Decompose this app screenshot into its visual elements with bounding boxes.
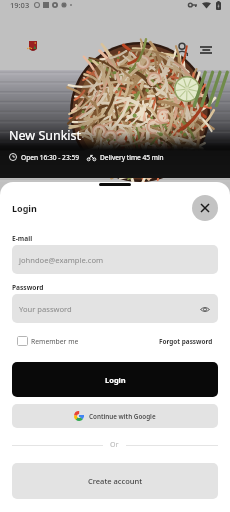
staticText: Remember me xyxy=(31,337,79,346)
button[interactable]: Login xyxy=(12,362,218,397)
button[interactable]: Close xyxy=(192,195,218,221)
button[interactable]: johndoe@example.com xyxy=(12,245,218,274)
button[interactable]: Your password xyxy=(12,294,218,323)
button[interactable]: Forgot password xyxy=(159,334,217,349)
staticText: Your password xyxy=(19,304,72,314)
staticText: johndoe@example.com xyxy=(19,255,104,265)
staticText: New Sunkist xyxy=(9,127,82,144)
staticText: Continue with Google xyxy=(89,412,156,421)
button[interactable]: Menu xyxy=(193,37,218,62)
staticText: Create account xyxy=(88,476,143,486)
staticText: Password xyxy=(12,283,44,292)
staticText: Or xyxy=(110,440,119,450)
button[interactable]: Account xyxy=(169,37,194,62)
staticText: Open 16:30 - 23:59 xyxy=(21,153,79,162)
staticText: E-mail xyxy=(12,234,33,243)
button[interactable]: Show password xyxy=(198,302,212,316)
button[interactable]: Remember me xyxy=(12,333,79,349)
staticText: Login xyxy=(12,202,37,214)
staticText: Delivery time 45 min xyxy=(100,153,164,162)
button[interactable]: Continue with Google xyxy=(12,404,218,428)
button[interactable]: Create account xyxy=(12,463,218,499)
staticText: 19:03 xyxy=(10,0,30,10)
button[interactable]: Restaurant logo xyxy=(25,39,41,54)
staticText: Login xyxy=(105,375,126,385)
